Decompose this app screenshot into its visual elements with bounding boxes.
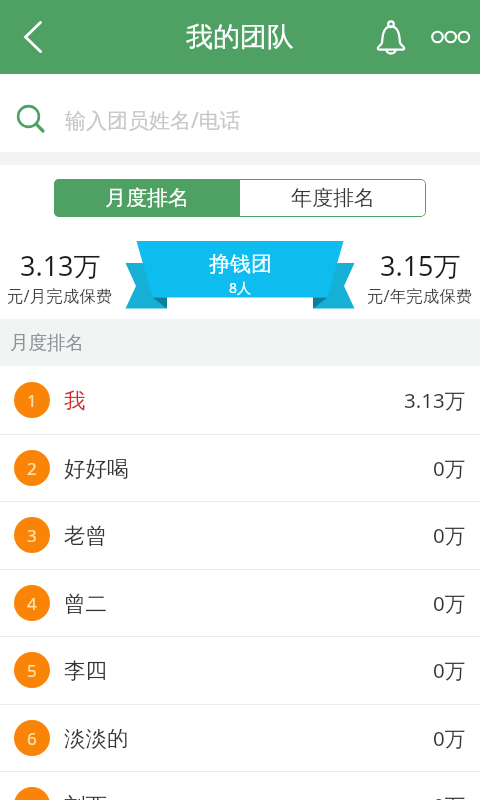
staticText: 0万: [433, 724, 466, 752]
staticText: 5: [27, 659, 37, 682]
button[interactable]: 4: [0, 569, 480, 637]
staticText: 好好喝: [64, 455, 129, 482]
staticText: 年度排名: [291, 185, 375, 211]
button[interactable]: 7: [0, 771, 480, 800]
staticText: 1: [27, 389, 37, 412]
staticText: 3.15万: [380, 247, 461, 284]
staticText: 3.13万: [20, 247, 101, 284]
staticText: 元/年完成保费: [367, 284, 473, 307]
button[interactable]: Back: [0, 0, 66, 74]
staticText: 元/月完成保费: [7, 284, 113, 307]
staticText: 3: [27, 524, 37, 547]
staticText: 老曾: [64, 522, 107, 549]
button[interactable]: 月度排名: [54, 179, 240, 217]
staticText: 0万: [433, 656, 466, 684]
staticText: 淡淡的: [64, 725, 129, 752]
staticText: 0万: [433, 454, 466, 482]
staticText: 我: [64, 387, 86, 414]
staticText: 我的团队: [186, 20, 294, 54]
button[interactable]: 6: [0, 704, 480, 772]
staticText: 4: [27, 592, 37, 615]
button[interactable]: 输入团员姓名/电话: [0, 74, 480, 152]
staticText: 曾二: [64, 590, 107, 617]
staticText: 挣钱团: [209, 251, 272, 277]
staticText: 8人: [229, 278, 252, 297]
button[interactable]: 3: [0, 501, 480, 569]
button[interactable]: 2: [0, 434, 480, 502]
button[interactable]: Notifications: [366, 0, 416, 74]
button[interactable]: 5: [0, 636, 480, 704]
button[interactable]: More options: [420, 0, 480, 74]
staticText: 刘西: [64, 792, 107, 800]
staticText: 月度排名: [105, 185, 189, 211]
staticText: 李四: [64, 657, 107, 684]
staticText: 输入团员姓名/电话: [65, 106, 241, 135]
staticText: 2: [27, 457, 37, 480]
staticText: 6: [27, 727, 37, 750]
staticText: 0万: [433, 589, 466, 617]
staticText: 3.13万: [404, 386, 466, 414]
button[interactable]: 1: [0, 366, 480, 434]
button[interactable]: 年度排名: [240, 179, 426, 217]
staticText: 0万: [433, 521, 466, 549]
staticText: 月度排名: [10, 331, 84, 354]
staticText: 0万: [433, 791, 466, 800]
